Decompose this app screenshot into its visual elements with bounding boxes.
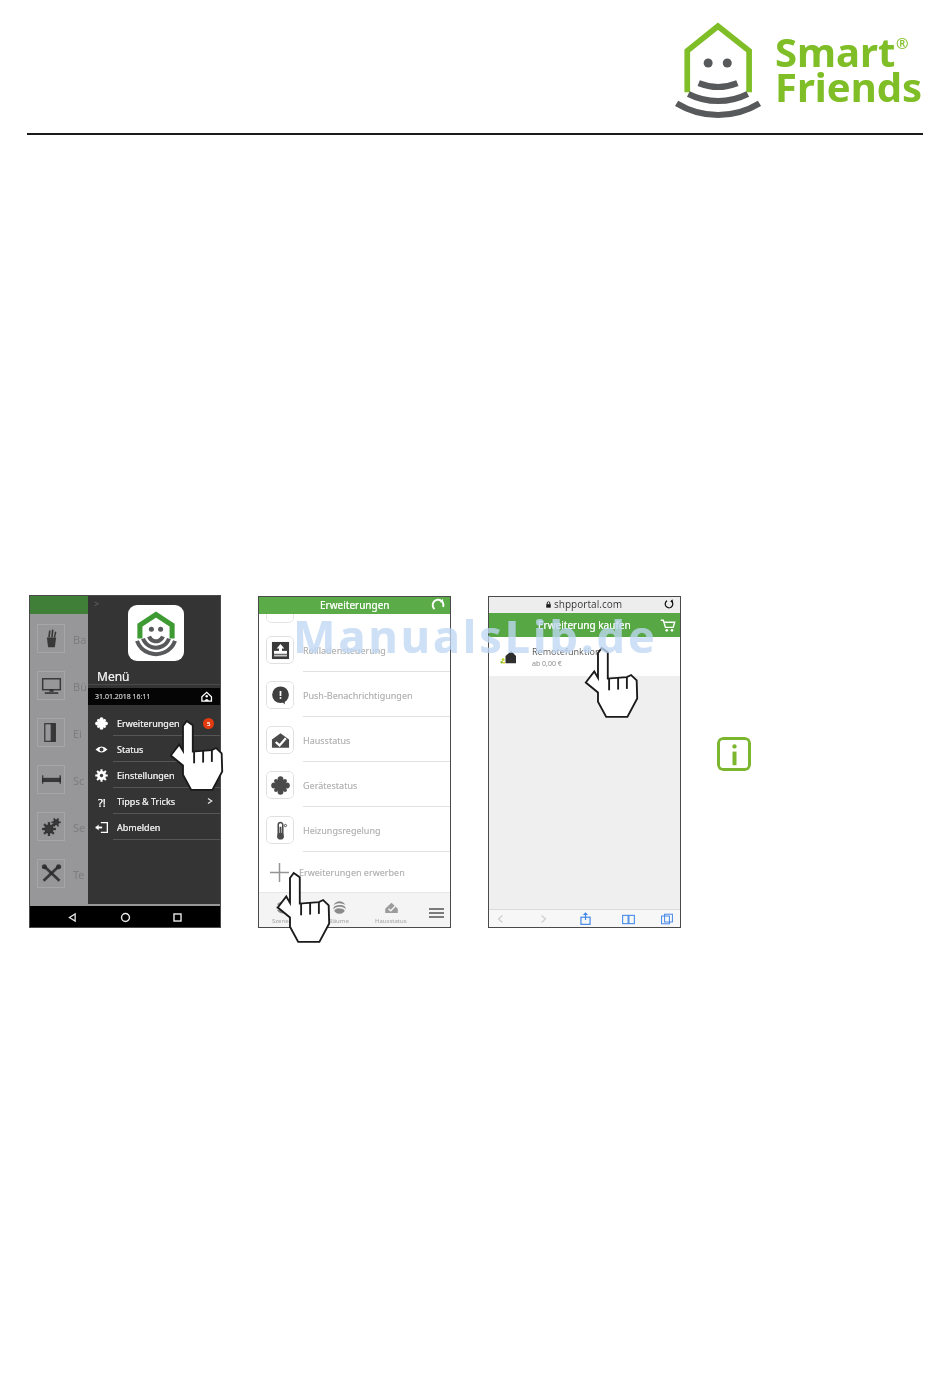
button[interactable]: Hausstatus xyxy=(370,900,412,925)
button[interactable]: Szenen xyxy=(261,900,303,925)
staticText: Remotefunktion xyxy=(532,645,601,657)
button[interactable]: Menu xyxy=(428,904,445,921)
staticText: Erweiterungen erwerben xyxy=(299,866,405,878)
staticText: Heizungsregelung xyxy=(303,824,381,836)
staticText: Abmelden xyxy=(117,821,161,833)
staticText: Status xyxy=(117,743,144,755)
staticText: Sc xyxy=(73,773,85,788)
button[interactable]: Remotefunktion xyxy=(488,637,681,676)
staticText: Szenen xyxy=(272,917,293,925)
staticText: Hausstatus xyxy=(375,917,407,925)
staticText: Erweiterung kaufen xyxy=(538,618,631,632)
button[interactable]: Share xyxy=(579,912,592,925)
button[interactable]: Erweiterungen erwerben xyxy=(258,852,451,892)
staticText: Push-Benachrichtigungen xyxy=(303,689,413,701)
button[interactable]: Gerätestatus xyxy=(258,762,451,807)
staticText: 31.01.2018 16:11 xyxy=(95,692,151,702)
button[interactable]: Hausstatus xyxy=(258,717,451,762)
button[interactable]: Status xyxy=(88,736,221,762)
staticText: Räume xyxy=(329,917,349,925)
staticText: ® xyxy=(896,33,909,53)
staticText: Gerätestatus xyxy=(303,779,358,791)
button[interactable]: Einstellungen xyxy=(88,762,221,788)
staticText: Ba xyxy=(73,632,87,647)
button[interactable]: Rollladensteuerung xyxy=(258,627,451,672)
staticText: Friends xyxy=(775,59,923,113)
staticText: Rollladensteuerung xyxy=(303,644,386,656)
button[interactable]: Shopping cart xyxy=(660,618,675,633)
staticText: Smart xyxy=(775,24,896,78)
staticText: 5 xyxy=(207,720,211,728)
button[interactable]: Abmelden xyxy=(88,814,221,840)
staticText: Tipps & Tricks xyxy=(117,795,176,807)
button[interactable]: ?! xyxy=(88,788,221,814)
staticText: > xyxy=(94,597,100,609)
staticText: ?! xyxy=(98,795,106,808)
button[interactable]: Information xyxy=(717,737,751,771)
button[interactable]: Tabs xyxy=(661,913,673,925)
staticText: Bü xyxy=(73,679,87,694)
button[interactable]: Refresh xyxy=(431,598,445,612)
staticText: ab 0,00 € xyxy=(532,659,562,669)
button[interactable]: Heizungsregelung xyxy=(258,807,451,852)
staticText: Einstellungen xyxy=(117,769,175,781)
staticText: Se xyxy=(73,820,86,835)
staticText: shpportal.com xyxy=(554,597,623,611)
staticText: ManualsLib.de xyxy=(293,605,658,666)
staticText: Te xyxy=(73,867,85,882)
staticText: Erweiterungen xyxy=(117,717,180,729)
staticText: Erweiterungen xyxy=(320,598,390,612)
staticText: Menü xyxy=(97,668,130,684)
button[interactable]: Push-Benachrichtigungen xyxy=(258,672,451,717)
button[interactable]: Bookmarks xyxy=(622,913,635,926)
button[interactable]: Räume xyxy=(318,900,360,925)
button[interactable]: Erweiterungen xyxy=(88,710,221,736)
staticText: Ei xyxy=(73,726,82,741)
staticText: Hausstatus xyxy=(303,734,351,746)
button[interactable]: Reload xyxy=(664,599,674,609)
